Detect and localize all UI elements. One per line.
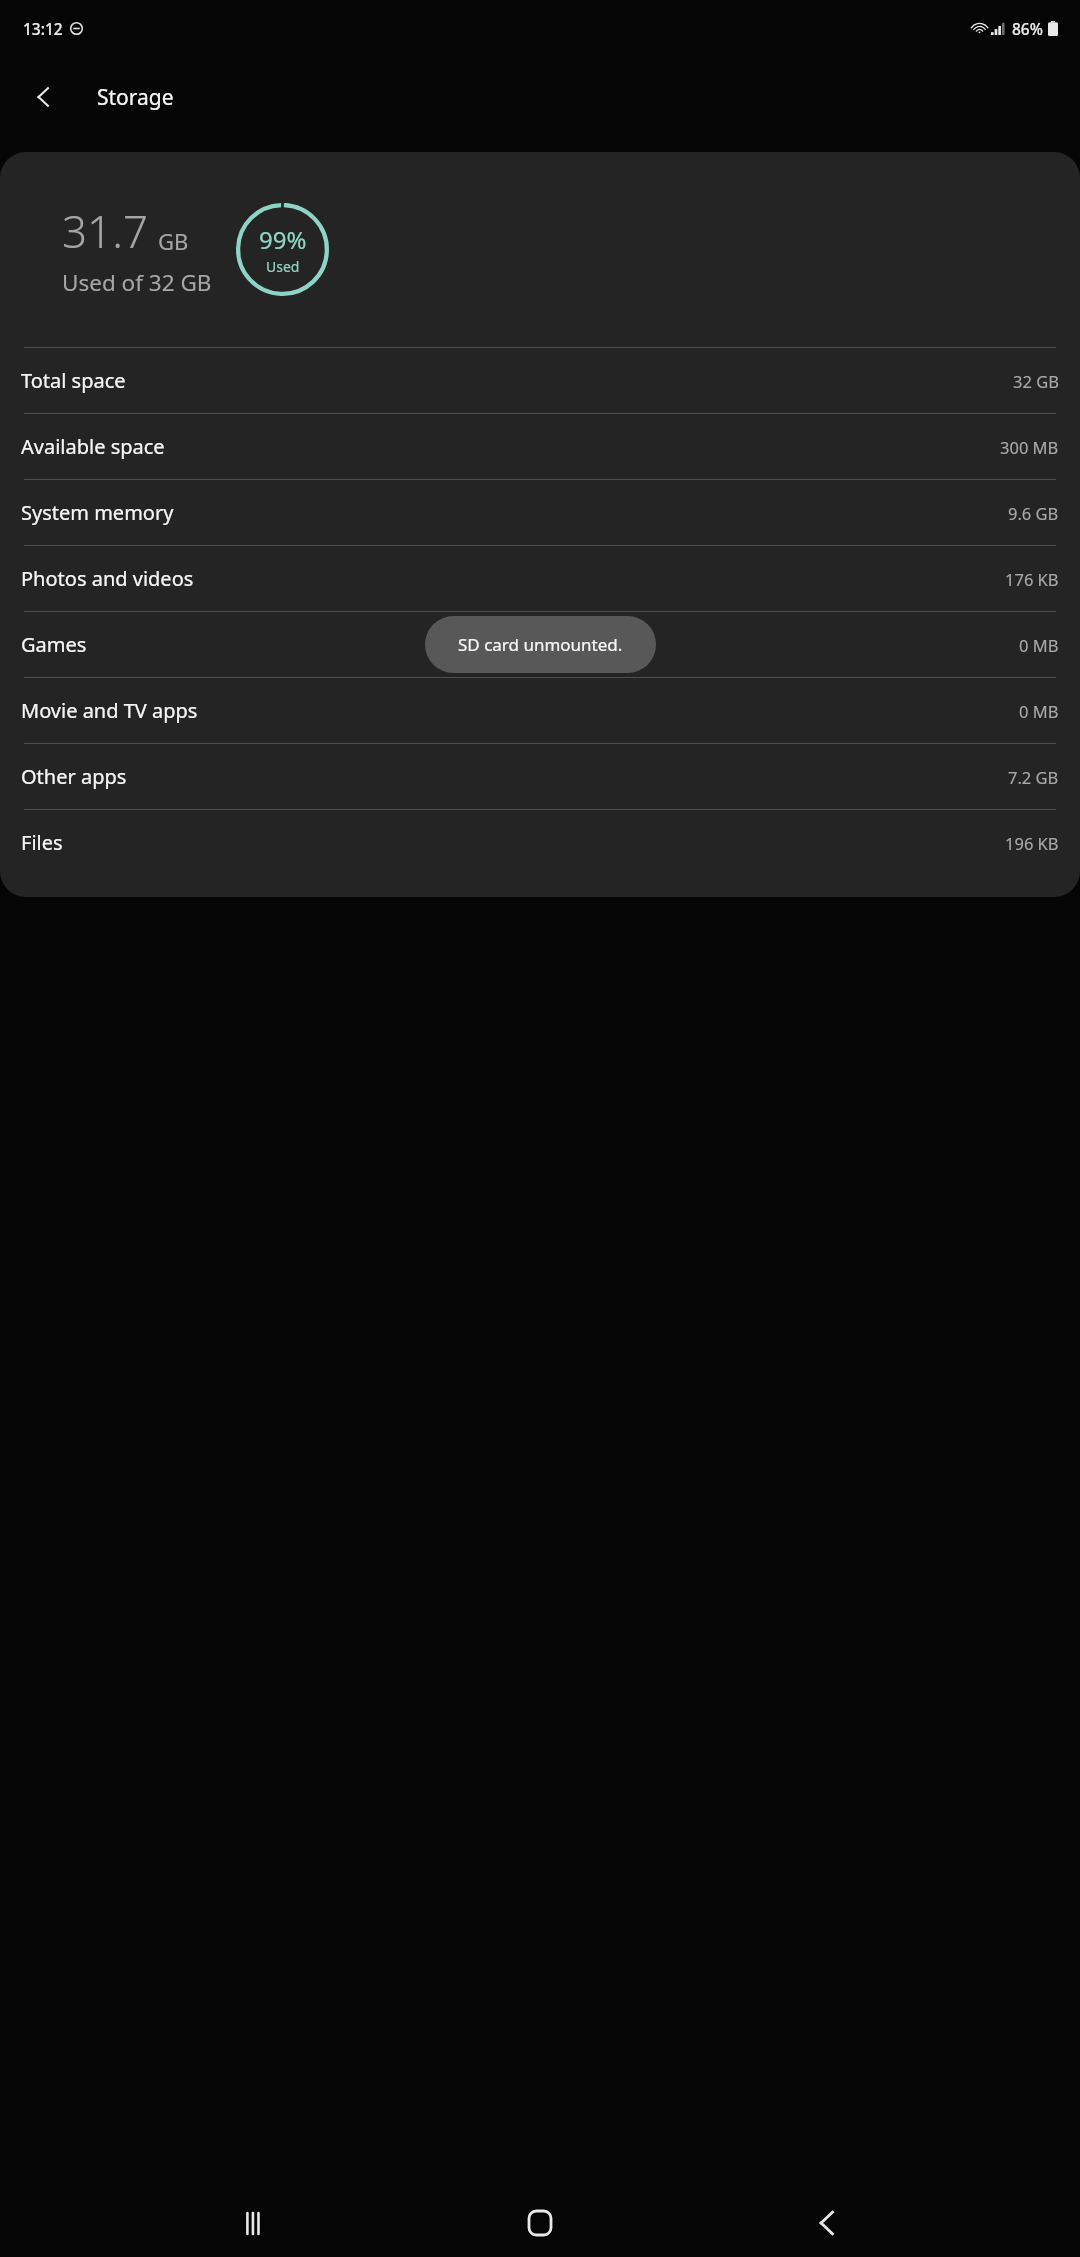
staticText: Storage xyxy=(97,83,174,112)
staticText: Used xyxy=(266,257,300,276)
staticText: Files xyxy=(21,829,63,856)
staticText: 86% xyxy=(1012,18,1043,39)
button[interactable]: System memory xyxy=(0,480,1080,545)
staticText: 31.7 xyxy=(62,201,149,261)
staticText: 13:12 xyxy=(23,18,63,39)
staticText: Total space xyxy=(21,367,126,394)
button[interactable]: Files xyxy=(0,810,1080,875)
staticText: GB xyxy=(158,226,189,256)
staticText: Movie and TV apps xyxy=(21,697,198,724)
staticText: 0 MB xyxy=(1019,634,1059,656)
staticText: Games xyxy=(21,631,87,658)
button[interactable]: Available space xyxy=(0,414,1080,479)
staticText: System memory xyxy=(21,499,174,526)
staticText: 32 GB xyxy=(1013,370,1059,392)
staticText: Other apps xyxy=(21,763,127,790)
staticText: 300 MB xyxy=(1000,436,1059,458)
staticText: 0 MB xyxy=(1019,700,1059,722)
staticText: 99% xyxy=(259,223,307,256)
button[interactable]: Total space xyxy=(0,348,1080,413)
button[interactable]: Games xyxy=(0,612,1080,677)
staticText: 196 KB xyxy=(1005,832,1059,854)
staticText: Used of 32 GB xyxy=(62,267,212,298)
button[interactable]: Home xyxy=(509,2192,571,2254)
button[interactable]: Photos and videos xyxy=(0,546,1080,611)
staticText: SD card unmounted. xyxy=(458,633,623,656)
staticText: 9.6 GB xyxy=(1008,502,1059,524)
button[interactable]: Movie and TV apps xyxy=(0,678,1080,743)
staticText: Available space xyxy=(21,433,165,460)
staticText: 176 KB xyxy=(1005,568,1059,590)
button[interactable]: Recent apps xyxy=(224,2192,286,2254)
staticText: 7.2 GB xyxy=(1008,766,1059,788)
button[interactable]: Back xyxy=(795,2192,857,2254)
button[interactable]: Back xyxy=(18,71,70,123)
button[interactable]: Other apps xyxy=(0,744,1080,809)
staticText: Photos and videos xyxy=(21,565,194,592)
